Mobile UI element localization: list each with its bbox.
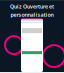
staticText: personnalisation [10,11,53,18]
staticText: Quiz Ouverture et [10,3,54,10]
